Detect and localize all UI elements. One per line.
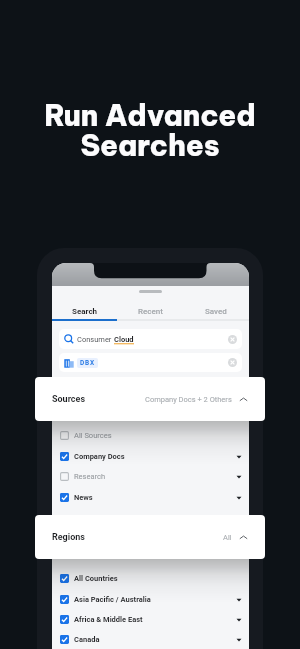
staticText: Company Docs + 2 Others	[145, 395, 232, 404]
staticText: Cloud	[114, 335, 134, 344]
staticText: Company Docs	[74, 452, 125, 461]
other: Expand	[236, 617, 242, 623]
button[interactable]: Asia Pacific / Australia	[52, 589, 249, 610]
other: Expand	[236, 597, 242, 603]
button[interactable]: All Countries	[52, 568, 249, 589]
staticText: Research	[74, 472, 106, 481]
other: Clear	[228, 358, 237, 367]
other: Expand	[236, 474, 242, 480]
button[interactable]: Canada	[52, 629, 249, 649]
other: Expand	[236, 637, 242, 643]
button[interactable]: Africa & Middle East	[52, 609, 249, 630]
staticText: Canada	[74, 635, 100, 644]
button[interactable]: Research	[52, 466, 249, 487]
staticText: Asia Pacific / Australia	[74, 595, 151, 604]
staticText: All Countries	[74, 574, 118, 583]
other: Clear	[228, 335, 237, 344]
staticText: All	[223, 533, 232, 542]
button[interactable]: Consumer	[59, 329, 242, 349]
staticText: DBX	[80, 359, 95, 367]
staticText: All Sources	[74, 431, 112, 440]
button[interactable]: All Sources	[52, 425, 249, 446]
button[interactable]: Search	[52, 304, 117, 321]
button[interactable]: Regions	[35, 515, 265, 559]
staticText: Africa & Middle East	[74, 615, 143, 624]
staticText: Regions	[52, 532, 85, 543]
staticText: News	[74, 493, 93, 502]
staticText: Run Advanced Searches	[44, 97, 256, 164]
other: Expand	[236, 495, 242, 501]
button[interactable]: DBX	[59, 353, 242, 372]
other: Collapse	[239, 395, 248, 404]
staticText: Sources	[52, 394, 86, 405]
other: Expand	[236, 454, 242, 460]
staticText: Recent	[138, 307, 163, 316]
button[interactable]: Company Docs	[52, 446, 249, 467]
button[interactable]: Sources	[35, 377, 265, 421]
button[interactable]: News	[52, 487, 249, 508]
staticText: Search	[72, 307, 98, 316]
button[interactable]: Recent	[117, 304, 183, 321]
staticText: Saved	[205, 307, 227, 316]
button[interactable]: Saved	[183, 304, 249, 321]
other: Collapse	[239, 533, 248, 542]
staticText: Consumer	[77, 335, 114, 344]
